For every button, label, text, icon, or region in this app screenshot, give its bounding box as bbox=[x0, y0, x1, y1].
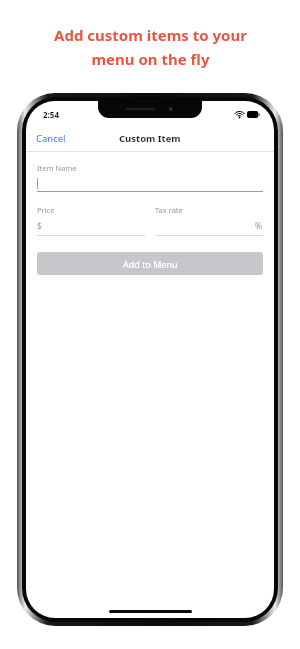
staticText: 2:54 bbox=[43, 109, 59, 120]
other: Home indicator bbox=[109, 610, 192, 613]
staticText: Item Name bbox=[37, 163, 77, 173]
button[interactable]: Tax rate bbox=[155, 205, 263, 236]
staticText: Add custom items to your bbox=[54, 25, 247, 45]
button[interactable]: Add to Menu bbox=[37, 252, 263, 275]
staticText: Custom Item bbox=[119, 132, 181, 145]
staticText: Add to Menu bbox=[123, 258, 178, 270]
staticText: Price bbox=[37, 205, 55, 215]
staticText: % bbox=[255, 220, 263, 232]
staticText: Tax rate bbox=[155, 205, 183, 215]
button[interactable]: Item Name bbox=[37, 163, 263, 192]
button[interactable]: Price bbox=[37, 205, 145, 236]
staticText: Cancel bbox=[36, 132, 66, 145]
staticText: menu on the fly bbox=[91, 49, 210, 69]
button[interactable]: Cancel bbox=[26, 128, 76, 149]
staticText: $ bbox=[37, 220, 42, 232]
